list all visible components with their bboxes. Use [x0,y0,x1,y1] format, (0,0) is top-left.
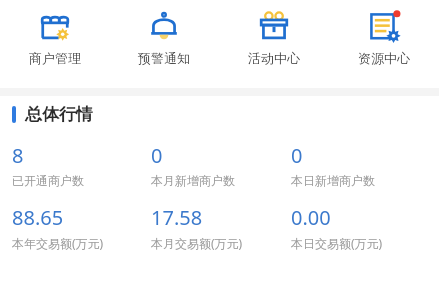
staticText: 活动中心 [248,50,300,66]
staticText: 本日交易额(万元) [291,235,383,251]
button[interactable]: 0 [291,142,431,188]
button[interactable]: 活动中心 [219,0,329,66]
staticText: 17.58 [151,204,203,231]
button[interactable]: 0 [151,142,291,188]
staticText: 本年交易额(万元) [12,235,104,251]
staticText: 0.00 [291,204,331,231]
staticText: 本日新增商户数 [291,173,375,188]
staticText: 本月交易额(万元) [151,235,243,251]
button[interactable]: 8 [12,142,151,188]
button[interactable]: 17.58 [151,204,291,251]
staticText: 本月新增商户数 [151,173,235,188]
staticText: 8 [12,142,24,169]
button[interactable]: 0.00 [291,204,431,251]
button[interactable]: 预警通知 [109,0,219,66]
staticText: 88.65 [12,204,64,231]
button[interactable]: 88.65 [12,204,151,251]
button[interactable]: 资源中心 [329,0,439,66]
button[interactable]: 商户管理 [0,0,109,66]
staticText: 商户管理 [29,50,81,66]
staticText: 资源中心 [358,50,410,66]
staticText: 已开通商户数 [12,173,84,188]
staticText: 预警通知 [138,50,190,66]
staticText: 0 [151,142,163,169]
staticText: 0 [291,142,303,169]
staticText: 总体行情 [25,104,93,125]
